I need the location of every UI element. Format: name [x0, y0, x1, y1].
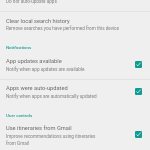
staticText: Remove searches you have performed from … — [6, 26, 120, 31]
button[interactable]: Apps were auto-updated — [0, 80, 150, 105]
button[interactable]: Use itineraries from Gmail — [0, 120, 150, 150]
staticText: Do not auto-update apps — [6, 0, 57, 4]
button[interactable]: Do not auto-update apps — [0, 0, 150, 10]
button[interactable]: App updates available — [0, 53, 150, 78]
staticText: Improve recommendations using itinerarie… — [6, 134, 98, 146]
button[interactable]: Toggle setting — [135, 131, 142, 138]
staticText: User controls — [6, 113, 33, 118]
staticText: Notify when app updates are available — [6, 67, 85, 72]
staticText: Use itineraries from Gmail — [6, 125, 72, 132]
staticText: Apps were auto-updated — [6, 85, 68, 92]
staticText: Notify when apps are automatically updat… — [6, 94, 97, 99]
staticText: Clear local search history — [6, 18, 70, 25]
staticText: Notifications — [6, 45, 32, 50]
button[interactable]: Toggle setting — [135, 88, 142, 95]
staticText: App updates available — [6, 58, 62, 65]
button[interactable]: Clear local search history — [0, 12, 150, 33]
button[interactable]: Toggle setting — [135, 61, 142, 68]
